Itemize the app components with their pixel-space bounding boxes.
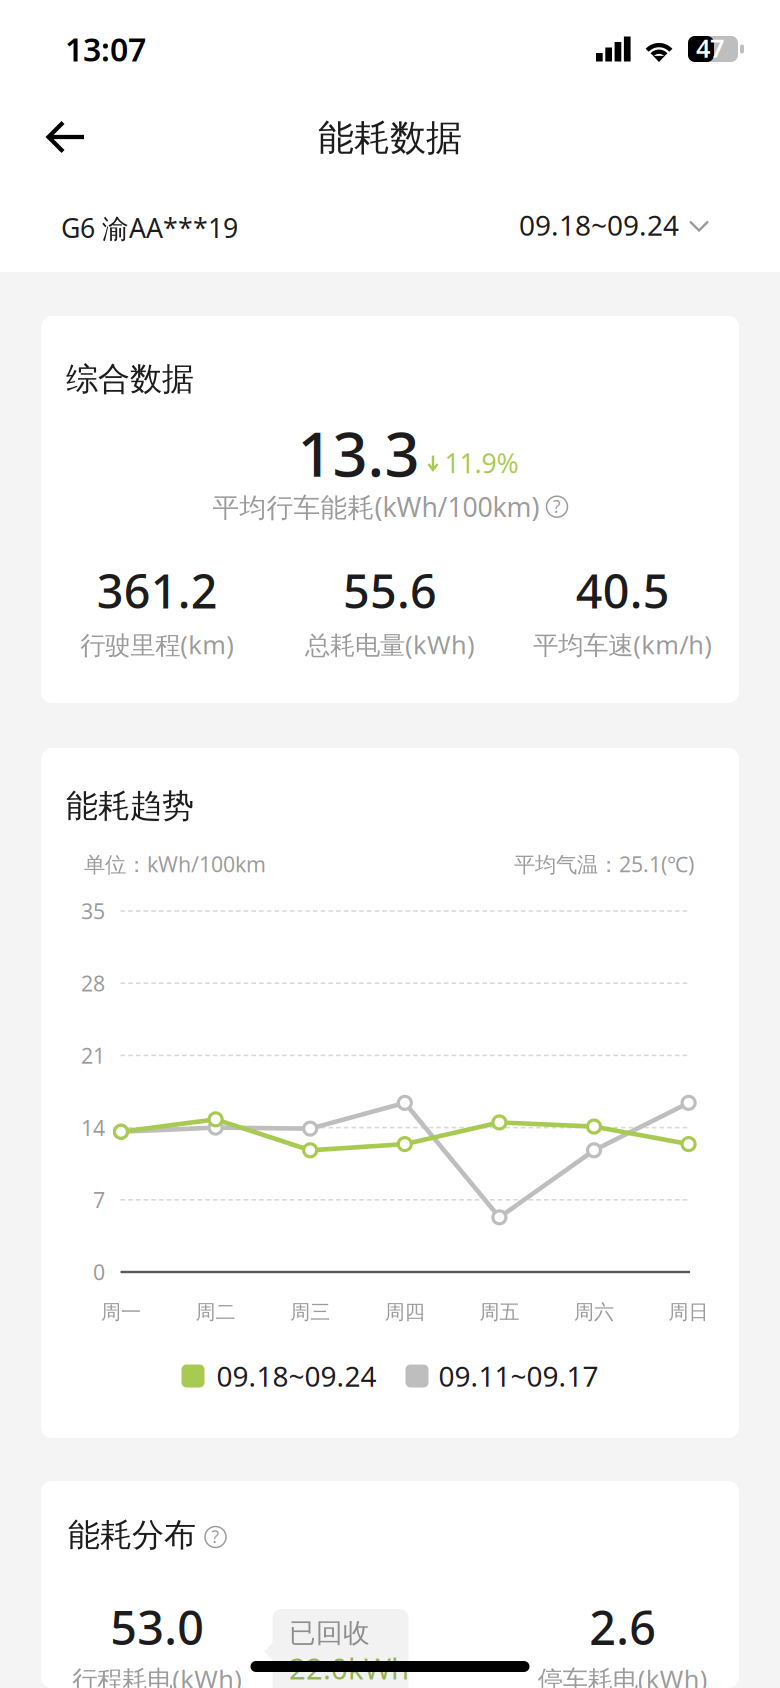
staticText: 7 [93, 1186, 105, 1214]
staticText: 综合数据 [66, 359, 194, 399]
staticText: 22.0kWh [289, 1648, 409, 1687]
staticText: 能耗趋势 [66, 786, 194, 826]
staticText: 已回收 [289, 1617, 370, 1649]
staticText: 周一 [101, 1300, 141, 1324]
staticText: 09.11~09.17 [438, 1357, 598, 1395]
staticText: 周三 [290, 1300, 330, 1324]
staticText: 0 [93, 1258, 105, 1286]
staticText: 行程耗电(kWh) [72, 1662, 242, 1688]
staticText: 21 [81, 1041, 105, 1069]
staticText: 能耗数据 [318, 116, 462, 160]
staticText: ? [553, 495, 561, 518]
staticText: 361.2 [97, 559, 218, 621]
staticText: 35 [81, 897, 105, 925]
staticText: 13.3 [297, 412, 419, 494]
staticText: 14 [81, 1113, 105, 1142]
staticText: 停车耗电(kWh) [538, 1662, 708, 1688]
staticText: 平均车速(km/h) [533, 628, 712, 661]
staticText: 53.0 [110, 1596, 204, 1658]
staticText: 2.6 [589, 1596, 656, 1658]
staticText: 28 [81, 969, 105, 997]
staticText: 09.18~09.24 [519, 206, 679, 244]
button[interactable]: 09.11~09.17 [376, 1357, 598, 1395]
staticText: 周五 [479, 1300, 519, 1324]
staticText: 单位：kWh/100km [84, 850, 266, 878]
staticText: 能耗分布 [68, 1515, 196, 1555]
staticText: 40.5 [576, 559, 670, 621]
button[interactable]: 关于平均行车能耗 [546, 496, 567, 517]
staticText: 09.18~09.24 [216, 1357, 376, 1395]
staticText: 周六 [574, 1300, 614, 1324]
staticText: 47 [696, 31, 724, 65]
button[interactable]: 关于能耗分布 [205, 1524, 226, 1545]
staticText: 周日 [669, 1300, 709, 1324]
staticText: 55.6 [343, 559, 437, 621]
staticText: 行驶里程(km) [80, 628, 234, 661]
staticText: 11.9% [444, 445, 518, 481]
staticText: 周四 [385, 1300, 425, 1324]
staticText: 平均气温：25.1(℃) [514, 850, 694, 878]
staticText: G6 渝AA***19 [61, 210, 238, 246]
button[interactable]: 09.18~09.24 [519, 208, 710, 242]
button[interactable]: 09.18~09.24 [181, 1357, 376, 1395]
button[interactable]: Back [31, 107, 101, 167]
staticText: 总耗电量(kWh) [305, 628, 475, 661]
staticText: ? [211, 1525, 219, 1548]
staticText: 周二 [196, 1300, 236, 1324]
staticText: 平均行车能耗(kWh/100km) [212, 489, 539, 524]
staticText: 13:07 [65, 28, 146, 70]
